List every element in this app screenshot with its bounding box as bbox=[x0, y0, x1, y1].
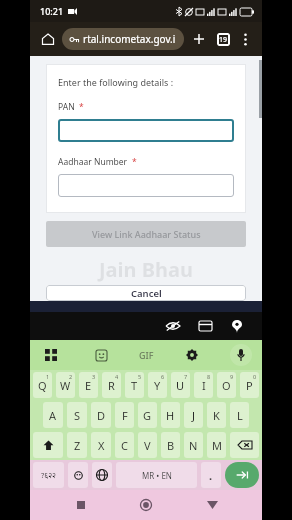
button[interactable]: Addresses bbox=[226, 315, 248, 337]
staticText: E bbox=[85, 378, 92, 393]
button[interactable]: D bbox=[91, 402, 111, 428]
button[interactable]: Y bbox=[148, 372, 167, 398]
button[interactable]: Q bbox=[33, 372, 52, 398]
staticText: L bbox=[237, 408, 243, 423]
staticText: Cancel bbox=[131, 287, 162, 300]
staticText: 19 bbox=[219, 35, 228, 45]
button[interactable]: Home bbox=[37, 28, 59, 50]
staticText: F bbox=[122, 408, 128, 423]
staticText: V bbox=[144, 438, 151, 453]
staticText: Y bbox=[154, 378, 161, 393]
button[interactable]: V bbox=[138, 432, 157, 458]
staticText: * bbox=[79, 101, 84, 113]
staticText: 0 bbox=[253, 373, 257, 380]
staticText: O bbox=[222, 378, 231, 393]
staticText: PAN bbox=[58, 101, 75, 113]
staticText: R bbox=[108, 378, 115, 393]
button[interactable]: Back bbox=[197, 490, 227, 520]
staticText: 5 bbox=[138, 373, 142, 380]
staticText: I bbox=[202, 378, 206, 393]
button[interactable]: H bbox=[161, 402, 180, 428]
staticText: D bbox=[97, 408, 106, 423]
button[interactable]: Backspace bbox=[230, 432, 259, 458]
button[interactable]: Enter bbox=[225, 462, 259, 488]
button[interactable]: Settings bbox=[181, 344, 203, 366]
staticText: Enter the following details : bbox=[58, 76, 174, 88]
staticText: Jain Bhau bbox=[99, 256, 194, 283]
button[interactable]: E bbox=[79, 372, 98, 398]
button[interactable]: Tabs: 19 bbox=[212, 28, 234, 50]
staticText: 7 bbox=[184, 373, 188, 380]
button[interactable]: View Link Aadhaar Status bbox=[46, 221, 246, 247]
button[interactable]: J bbox=[184, 402, 203, 428]
button[interactable]: Recent apps bbox=[66, 490, 96, 520]
staticText: MR • EN bbox=[142, 470, 172, 481]
button[interactable]: Voice input bbox=[230, 344, 252, 366]
button[interactable]: K bbox=[207, 402, 226, 428]
button[interactable]: W bbox=[56, 372, 75, 398]
staticText: H bbox=[166, 408, 175, 423]
button[interactable]: Home bbox=[131, 490, 161, 520]
staticText: GIF bbox=[139, 349, 154, 361]
button[interactable]: Symbols bbox=[33, 462, 64, 488]
staticText: Q bbox=[38, 378, 47, 393]
staticText: N bbox=[189, 438, 198, 453]
staticText: B bbox=[167, 438, 175, 453]
button[interactable]: X bbox=[91, 432, 111, 458]
button[interactable]: T bbox=[125, 372, 144, 398]
staticText: G bbox=[143, 408, 152, 423]
staticText: . bbox=[209, 468, 213, 483]
button[interactable]: Keyboard modes bbox=[40, 344, 62, 366]
staticText: J bbox=[192, 408, 196, 423]
staticText: 2 bbox=[69, 373, 73, 380]
button[interactable]: I bbox=[194, 372, 213, 398]
button[interactable]: MR • EN bbox=[116, 462, 197, 488]
staticText: C bbox=[121, 438, 128, 453]
staticText: W bbox=[60, 378, 71, 393]
button[interactable] bbox=[58, 119, 234, 142]
button[interactable]: O bbox=[217, 372, 236, 398]
staticText: P bbox=[246, 378, 253, 393]
staticText: U bbox=[176, 378, 185, 393]
button[interactable]: P bbox=[240, 372, 259, 398]
staticText: rtal.incometax.gov.in bbox=[83, 32, 176, 46]
button[interactable]: Period bbox=[201, 462, 221, 488]
staticText: K bbox=[213, 408, 220, 423]
staticText: 3 bbox=[92, 373, 96, 380]
button[interactable]: Z bbox=[67, 432, 87, 458]
button[interactable]: rtal.incometax.gov.in bbox=[62, 28, 184, 50]
staticText: Aadhaar Number bbox=[58, 156, 128, 168]
button[interactable]: B bbox=[161, 432, 180, 458]
staticText: 8 bbox=[207, 373, 211, 380]
button[interactable]: G bbox=[138, 402, 157, 428]
button[interactable]: More options bbox=[235, 29, 255, 49]
button[interactable]: Emoji bbox=[68, 462, 88, 488]
button[interactable]: GIF bbox=[139, 344, 154, 366]
button[interactable]: Stickers bbox=[90, 344, 112, 366]
staticText: M bbox=[212, 438, 222, 453]
button[interactable] bbox=[58, 174, 234, 197]
staticText: View Link Aadhaar Status bbox=[92, 228, 201, 240]
staticText: S bbox=[74, 408, 81, 423]
button[interactable]: R bbox=[102, 372, 121, 398]
button[interactable]: S bbox=[67, 402, 87, 428]
button[interactable]: N bbox=[184, 432, 203, 458]
button[interactable]: Payment cards bbox=[194, 315, 216, 337]
button[interactable]: F bbox=[115, 402, 134, 428]
button[interactable]: Shift bbox=[33, 432, 63, 458]
staticText: X bbox=[98, 438, 105, 453]
staticText: ?६२२ bbox=[41, 470, 56, 480]
button[interactable]: Change language bbox=[92, 462, 112, 488]
staticText: 10:21 bbox=[40, 5, 64, 17]
staticText: A bbox=[49, 408, 57, 423]
button[interactable]: L bbox=[230, 402, 249, 428]
button[interactable]: U bbox=[171, 372, 190, 398]
button[interactable]: New tab bbox=[188, 28, 210, 50]
button[interactable]: A bbox=[43, 402, 63, 428]
staticText: 9 bbox=[230, 373, 234, 380]
button[interactable]: M bbox=[207, 432, 226, 458]
button[interactable]: Cancel bbox=[46, 285, 246, 301]
button[interactable]: C bbox=[115, 432, 134, 458]
staticText: Z bbox=[74, 438, 81, 453]
button[interactable]: Hide password bbox=[162, 315, 184, 337]
